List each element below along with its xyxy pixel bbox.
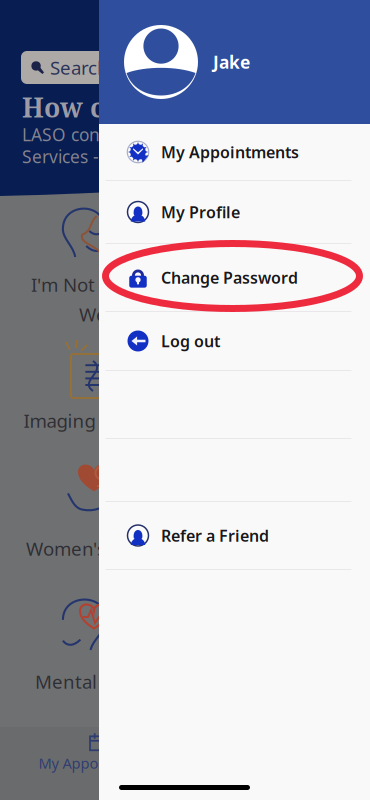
- staticText: My Appointments: [38, 753, 159, 773]
- staticText: I'm Not Feeling: [31, 272, 165, 297]
- staticText: Imaging Services: [23, 408, 172, 433]
- button[interactable]: Refer a Friend: [99, 502, 370, 569]
- staticText: Refer a Friend: [161, 525, 269, 546]
- staticText: Search: [50, 55, 109, 80]
- button[interactable]: Change Password: [99, 244, 370, 311]
- staticText: My Profile: [161, 201, 240, 223]
- staticText: Jake: [213, 50, 250, 73]
- button[interactable]: My Profile: [99, 181, 370, 243]
- staticText: How can we help?: [22, 89, 264, 125]
- button[interactable]: Log out: [99, 312, 370, 370]
- button[interactable]: My Appointments: [14, 728, 184, 778]
- staticText: Well: [79, 302, 117, 327]
- staticText: Log out: [161, 330, 220, 352]
- staticText: My Appointments: [161, 141, 299, 163]
- staticText: Women's Health: [26, 536, 170, 561]
- staticText: Services - on demand.: [22, 145, 204, 168]
- staticText: Change Password: [161, 267, 298, 288]
- staticText: Mental Health: [35, 669, 161, 694]
- button[interactable]: My Appointments: [99, 124, 370, 180]
- staticText: LASO connects you to LASO Health: [22, 123, 307, 146]
